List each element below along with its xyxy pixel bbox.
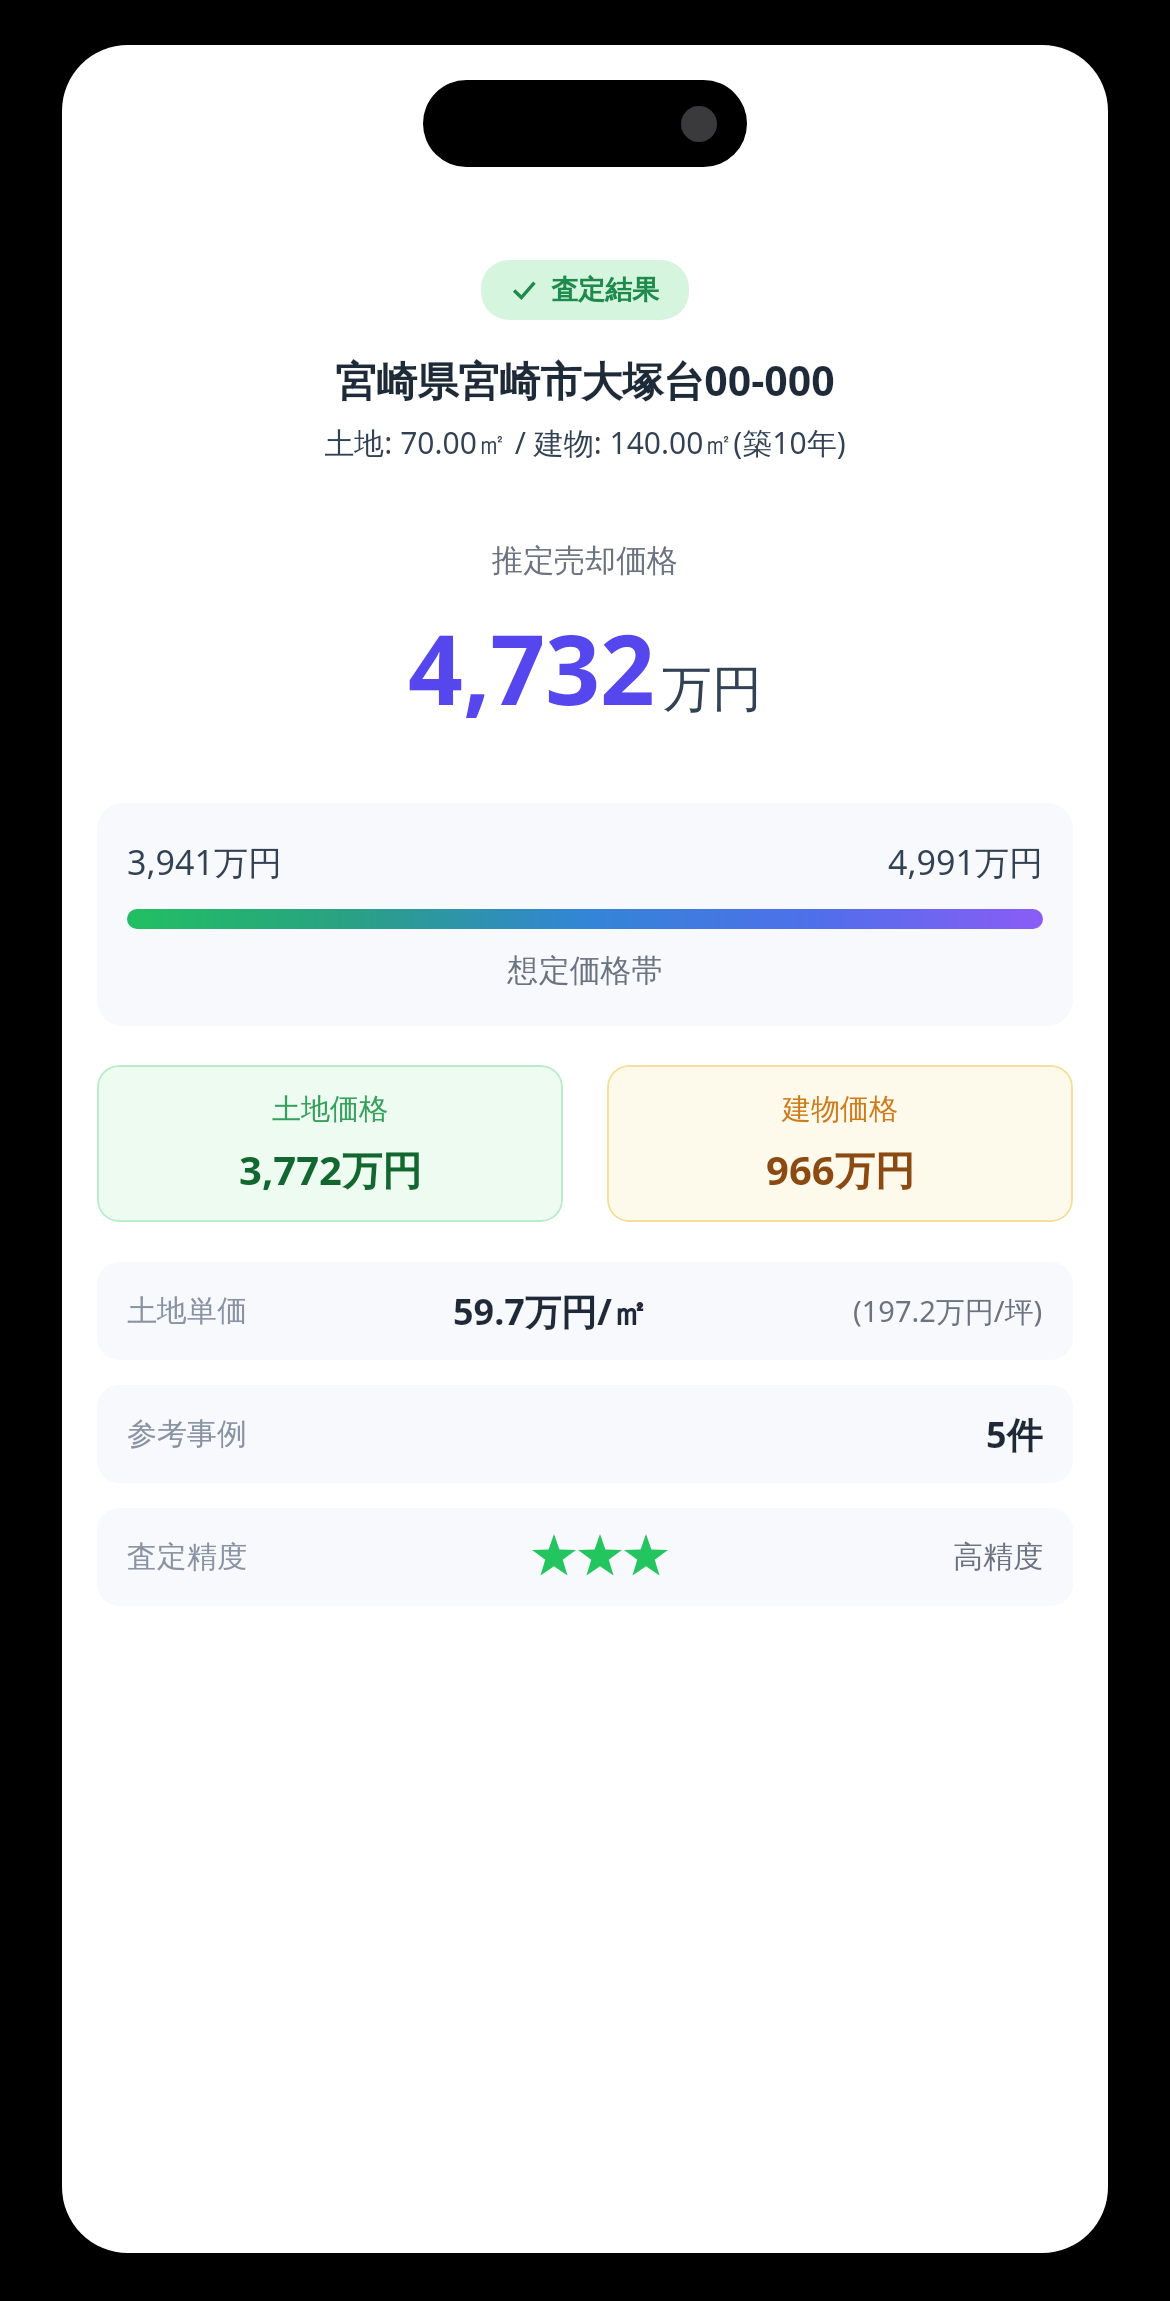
other: Star bbox=[531, 1534, 577, 1580]
other: Star bbox=[623, 1534, 669, 1580]
staticText: 土地: 70.00㎡ / 建物: 140.00㎡(築10年) bbox=[324, 422, 846, 463]
button[interactable]: 建物価格 bbox=[607, 1065, 1073, 1222]
staticText: 3,772万円 bbox=[239, 1142, 422, 1197]
button[interactable]: 土地単価 bbox=[97, 1262, 1073, 1360]
staticText: 万円 bbox=[662, 658, 762, 721]
staticText: 宮崎県宮崎市大塚台00-000 bbox=[335, 352, 835, 408]
staticText: 5件 bbox=[986, 1410, 1043, 1459]
staticText: 4,991万円 bbox=[888, 839, 1043, 885]
staticText: 966万円 bbox=[766, 1142, 915, 1197]
button[interactable]: 査定精度 bbox=[97, 1508, 1073, 1606]
staticText: 4,732 bbox=[408, 602, 656, 733]
button[interactable]: 3,941万円 bbox=[97, 803, 1073, 1026]
other: Star bbox=[577, 1534, 623, 1580]
staticText: (197.2万円/坪) bbox=[853, 1291, 1043, 1331]
button[interactable]: 参考事例 bbox=[97, 1385, 1073, 1483]
staticText: 高精度 bbox=[953, 1538, 1043, 1576]
staticText: 建物価格 bbox=[782, 1091, 898, 1128]
staticText: 査定結果 bbox=[551, 273, 659, 307]
staticText: 推定売却価格 bbox=[492, 541, 678, 580]
staticText: 59.7万円/㎡ bbox=[453, 1287, 648, 1336]
staticText: 土地価格 bbox=[272, 1091, 388, 1128]
staticText: 参考事例 bbox=[127, 1415, 247, 1453]
button[interactable]: 土地価格 bbox=[97, 1065, 563, 1222]
button[interactable]: 査定結果 bbox=[481, 260, 689, 320]
staticText: 3,941万円 bbox=[127, 839, 282, 885]
staticText: 査定精度 bbox=[127, 1538, 247, 1576]
staticText: 土地単価 bbox=[127, 1292, 247, 1330]
staticText: 想定価格帯 bbox=[127, 951, 1043, 990]
